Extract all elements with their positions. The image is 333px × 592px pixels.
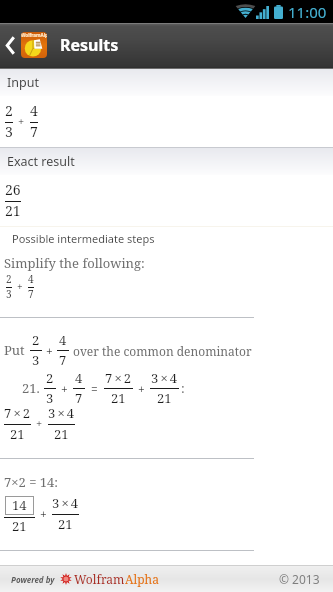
staticText: Wolfram [74,571,125,587]
staticText: 2 [6,272,12,286]
staticText: 7 × 2 [105,369,132,387]
staticText: 7 × 2 [4,404,31,422]
staticText: over the common denominator [73,343,252,359]
staticText: 2 [32,331,40,349]
staticText: Alpha [125,571,159,587]
staticText: © 2013 [279,571,320,587]
staticText: 7 [30,122,38,141]
staticText: = [91,381,98,397]
staticText: 7 [75,389,83,407]
staticText: 14 [12,496,27,514]
staticText: 7×2 = 14: [4,473,59,491]
staticText: 7 [28,287,34,301]
staticText: 3 × 4 [151,369,178,387]
staticText: : [181,379,185,397]
staticText: 2 [46,369,54,387]
button[interactable]: Powered by [11,566,159,592]
staticText: 4 [28,272,34,286]
staticText: 7 [59,351,67,369]
button[interactable]: WolframAlpha [21,32,47,58]
staticText: + [46,343,53,359]
staticText: Put [4,341,25,359]
staticText: 21 [12,517,27,535]
staticText: 2 [5,101,13,120]
staticText: 21. [22,379,40,397]
staticText: + [40,506,47,522]
staticText: 4 [75,369,83,387]
staticText: Powered by [11,574,55,585]
staticText: 3 [46,389,54,407]
staticText: 4 [30,101,38,120]
staticText: 21 [5,201,21,220]
staticText: 3 [6,287,12,301]
staticText: Results [60,34,119,56]
staticText: 3 [32,351,40,369]
staticText: 11:00 [288,2,327,22]
staticText: + [138,381,145,397]
staticText: + [36,416,43,431]
staticText: 3 × 4 [48,404,75,422]
staticText: 21 [54,425,69,443]
staticText: + [17,280,23,294]
staticText: + [18,114,25,129]
staticText: 21 [10,425,25,443]
staticText: 21 [157,389,172,407]
staticText: 3 [5,122,13,141]
staticText: Possible intermediate steps [12,231,155,246]
staticText: 3 × 4 [52,494,79,512]
button[interactable]: Back [0,23,21,67]
staticText: + [61,381,68,397]
staticText: Exact result [7,153,75,170]
staticText: 21 [58,515,73,533]
staticText: 4 [59,331,67,349]
staticText: 21 [111,389,126,407]
staticText: 26 [5,180,21,199]
staticText: Input [7,74,39,91]
staticText: WolframAlpha [21,32,47,38]
staticText: Simplify the following: [4,254,145,272]
